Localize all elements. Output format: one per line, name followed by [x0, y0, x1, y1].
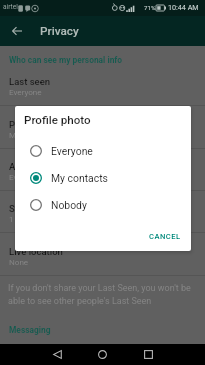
button[interactable]: Home — [92, 344, 113, 365]
button[interactable]: About — [0, 149, 205, 191]
staticText: Live location — [9, 246, 63, 257]
staticText: 71% — [144, 4, 156, 11]
staticText: My contacts — [51, 172, 108, 184]
staticText: Everyone — [9, 172, 42, 181]
button[interactable]: Status — [0, 191, 205, 233]
button[interactable]: Last seen — [0, 64, 205, 106]
staticText: Status — [9, 203, 37, 214]
button[interactable]: Back — [6, 20, 28, 42]
staticText: Profile photo — [24, 113, 91, 127]
button[interactable]: Who can see my personal info — [9, 55, 123, 65]
staticText: 1 contact excluded — [9, 214, 78, 223]
staticText: Everyone — [9, 87, 42, 96]
staticText: None — [9, 257, 29, 266]
button[interactable]: Back — [47, 344, 68, 365]
button[interactable]: Messaging — [9, 325, 51, 335]
button[interactable]: Nobody — [15, 191, 191, 218]
staticText: Profile photo — [9, 119, 64, 130]
button[interactable]: Live location — [0, 234, 205, 276]
staticText: About — [9, 161, 35, 172]
staticText: My contacts — [9, 130, 54, 139]
button[interactable]: Everyone — [15, 137, 191, 164]
staticText: If you don't share your Last Seen, you w… — [8, 283, 191, 306]
button[interactable]: CANCEL — [144, 228, 186, 245]
staticText: Last seen — [9, 76, 51, 87]
staticText: Everyone — [51, 145, 93, 157]
button[interactable]: Profile photo — [0, 107, 205, 149]
staticText: 10:44 AM — [168, 3, 199, 11]
button[interactable]: Recents — [138, 344, 159, 365]
button[interactable]: My contacts — [15, 164, 191, 191]
staticText: CANCEL — [149, 232, 181, 241]
staticText: airtel — [3, 3, 18, 11]
staticText: Nobody — [51, 199, 87, 211]
staticText: Privacy — [40, 24, 79, 38]
